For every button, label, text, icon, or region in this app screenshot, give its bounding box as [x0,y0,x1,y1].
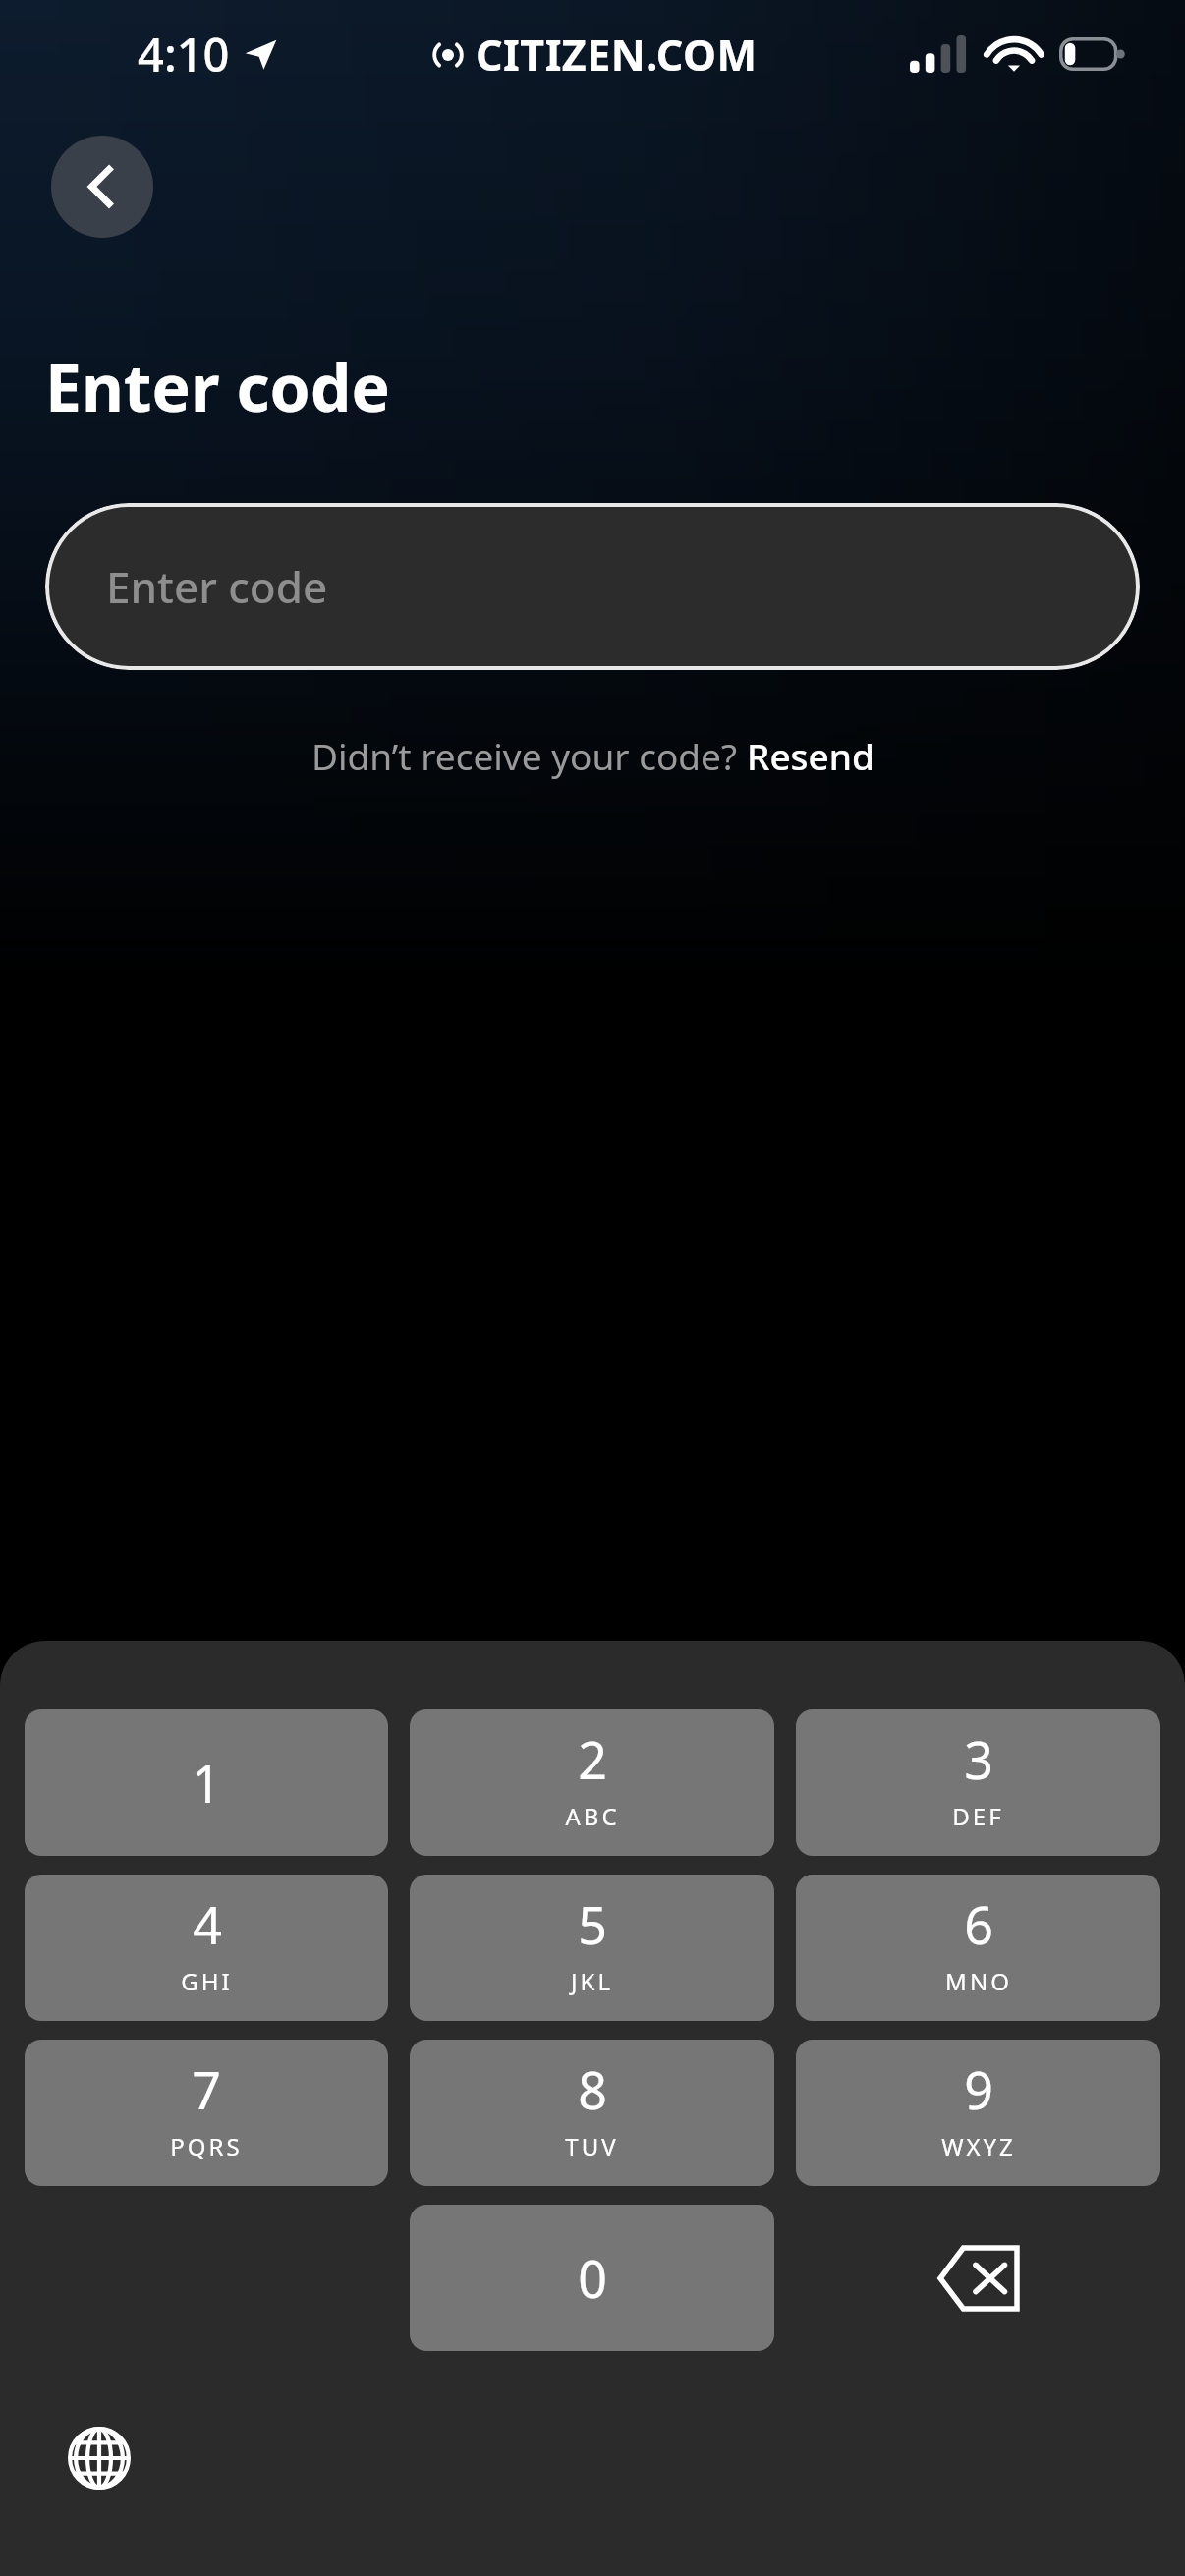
button[interactable]: 6 [796,1875,1160,2021]
button[interactable]: 7 [25,2040,388,2186]
staticText: Enter code [106,557,328,616]
staticText: CITIZEN.COM [476,26,758,84]
staticText: MNO [945,1965,1012,1997]
staticText: Resend [747,731,875,780]
button[interactable]: 9 [796,2040,1160,2186]
staticText: GHI [181,1965,233,1997]
button[interactable]: Resend [747,731,875,780]
button[interactable]: Change keyboard language [51,2410,147,2506]
staticText: TUV [565,2130,619,2162]
staticText: ABC [565,1800,620,1832]
button[interactable]: Enter code [45,503,1140,670]
staticText: PQRS [170,2130,243,2162]
staticText: WXYZ [941,2130,1016,2162]
staticText: Enter code [45,342,390,430]
staticText: 6 [964,1889,993,1959]
staticText: 8 [578,2054,607,2124]
staticText: 3 [964,1724,993,1794]
staticText: 4 [193,1889,222,1959]
button[interactable]: 8 [410,2040,774,2186]
staticText: 4:10 [138,23,230,85]
button[interactable]: Back [51,136,153,238]
button[interactable]: Backspace [796,2205,1160,2351]
staticText: 9 [964,2054,993,2124]
staticText: 5 [578,1889,607,1959]
staticText: 0 [578,2243,607,2313]
staticText: 1 [192,1748,221,1818]
staticText: DEF [952,1800,1004,1832]
staticText: Didn’t receive your code? [311,731,747,780]
button[interactable]: 5 [410,1875,774,2021]
staticText: 7 [192,2054,221,2124]
button[interactable]: 2 [410,1709,774,1856]
button[interactable]: 4 [25,1875,388,2021]
button[interactable]: 0 [410,2205,774,2351]
button[interactable]: 3 [796,1709,1160,1856]
staticText: JKL [571,1965,613,1997]
staticText: 2 [578,1724,607,1794]
button[interactable]: 1 [25,1709,388,1856]
